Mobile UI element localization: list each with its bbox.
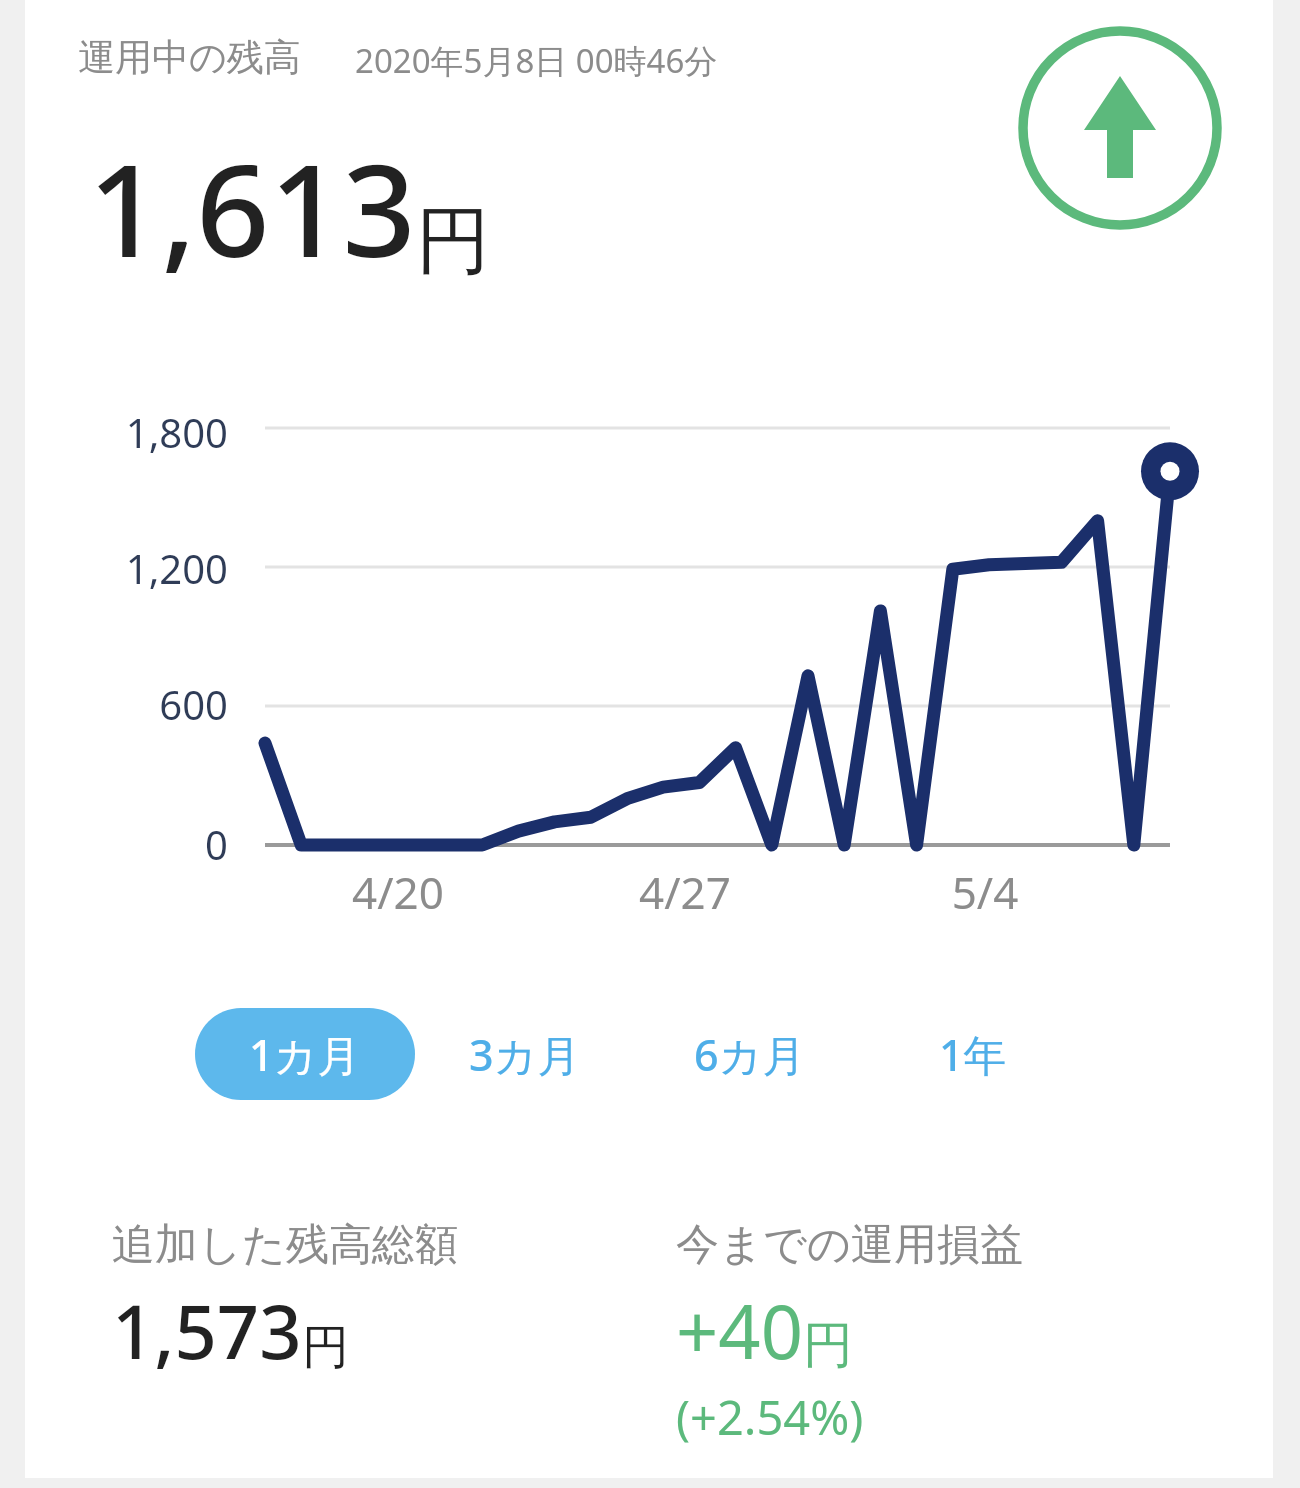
staticText: 600 xyxy=(0,677,228,731)
staticText: 追加した残高総額 xyxy=(112,1218,459,1272)
staticText: 3カ月 xyxy=(469,1025,581,1084)
staticText: 2020年5月8日 00時46分 xyxy=(355,38,718,83)
staticText: 6カ月 xyxy=(694,1025,806,1084)
button[interactable]: 3カ月 xyxy=(415,1008,635,1100)
staticText: 1,800 xyxy=(0,405,228,459)
staticText: 今までの運用損益 xyxy=(676,1218,1024,1272)
button[interactable]: 運用中 xyxy=(1016,24,1224,232)
staticText: 円 xyxy=(416,195,490,288)
staticText: 1年 xyxy=(939,1025,1007,1084)
button[interactable]: 1年 xyxy=(865,1008,1080,1100)
button[interactable]: 6カ月 xyxy=(635,1008,865,1100)
staticText: 1,200 xyxy=(0,541,228,595)
staticText: +40 xyxy=(676,1280,803,1381)
staticText: 円 xyxy=(302,1318,349,1377)
button[interactable]: 1カ月 xyxy=(195,1008,415,1100)
staticText: 0 xyxy=(0,817,228,871)
staticText: 運用中の残高 xyxy=(78,34,301,81)
staticText: 1カ月 xyxy=(249,1025,361,1084)
staticText: 1,613 xyxy=(88,120,416,294)
staticText: (+2.54%) xyxy=(676,1385,864,1449)
staticText: 5/4 xyxy=(920,862,1050,922)
staticText: 円 xyxy=(803,1314,853,1377)
staticText: 1,573 xyxy=(112,1280,302,1381)
staticText: 4/20 xyxy=(333,862,463,922)
staticText: 4/27 xyxy=(620,862,750,922)
